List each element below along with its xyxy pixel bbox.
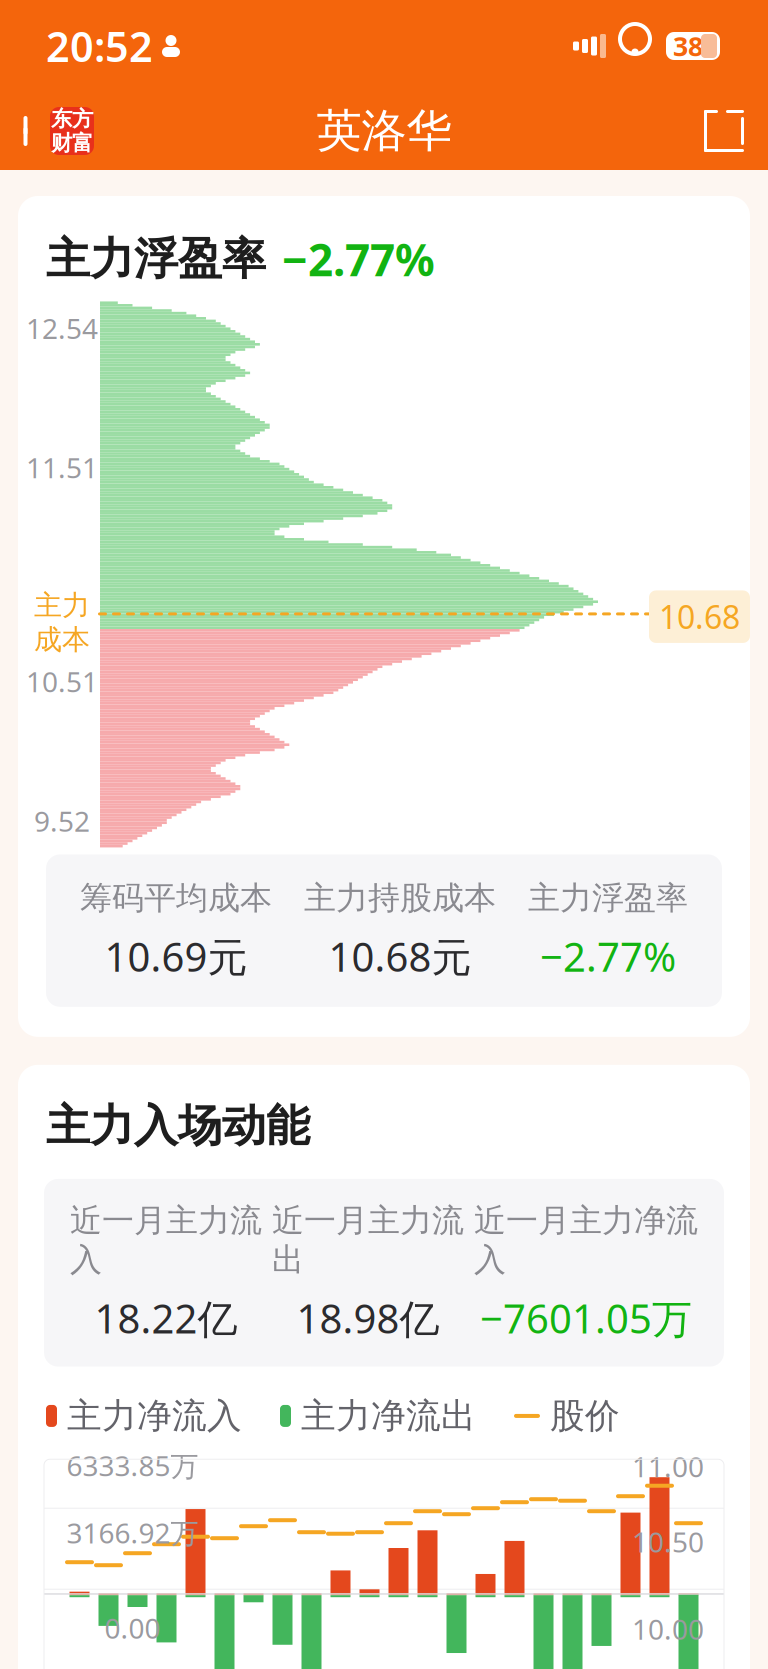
staticText: 10.68元	[328, 930, 471, 983]
staticText: 财富	[51, 130, 93, 156]
staticText: 主力净流出	[301, 1395, 476, 1437]
staticText: −7601.05万	[480, 1291, 692, 1345]
staticText: 近一月主力流出	[272, 1201, 464, 1279]
staticText: 主力持股成本	[304, 878, 496, 918]
button[interactable]: 返回	[0, 99, 94, 163]
staticText: 0.00	[104, 1609, 160, 1646]
staticText: 近一月主力净流入	[474, 1201, 698, 1279]
staticText: 11.51	[26, 449, 98, 486]
staticText: 英洛华	[316, 103, 451, 159]
staticText: 近一月主力流入	[70, 1201, 262, 1279]
staticText: 主力浮盈率	[528, 878, 688, 918]
staticText: 东方	[51, 106, 93, 132]
staticText: 10.68	[659, 595, 740, 638]
staticText: 主力成本	[34, 588, 90, 657]
staticText: 主力浮盈率	[46, 232, 266, 286]
staticText: 12.54	[26, 309, 98, 347]
staticText: 6333.85万	[66, 1447, 198, 1484]
staticText: 主力净流入	[67, 1395, 242, 1437]
staticText: −2.77%	[540, 930, 676, 983]
staticText: 3166.92万	[66, 1514, 198, 1551]
staticText: 20:52	[46, 19, 153, 73]
staticText: 10.00	[632, 1610, 704, 1647]
button[interactable]: 分享	[702, 100, 768, 162]
staticText: −2.77%	[282, 230, 435, 288]
staticText: 11.00	[632, 1448, 704, 1485]
staticText: 10.50	[632, 1523, 704, 1560]
staticText: 10.51	[26, 663, 98, 700]
staticText: 筹码平均成本	[80, 878, 272, 918]
staticText: 38	[673, 28, 703, 64]
staticText: 18.98亿	[296, 1291, 439, 1345]
staticText: 主力入场动能	[46, 1099, 310, 1153]
staticText: 9.52	[34, 802, 90, 839]
staticText: 18.22亿	[94, 1291, 237, 1345]
staticText: 股价	[550, 1395, 620, 1437]
staticText: 10.69元	[104, 930, 247, 983]
